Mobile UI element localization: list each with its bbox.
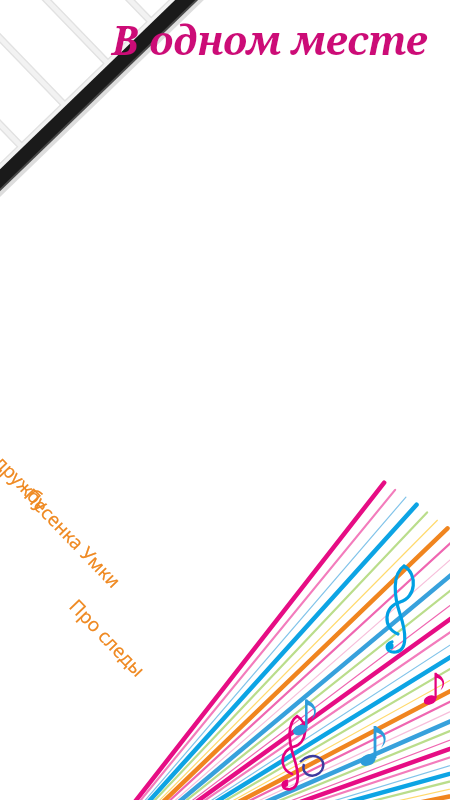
- staticText: Песенка Умки: [18, 483, 127, 593]
- button[interactable]: Про следы: [64, 593, 151, 683]
- staticText: В одном месте: [112, 12, 428, 66]
- button[interactable]: дружбу: [0, 449, 55, 516]
- staticText: дружбу: [0, 449, 55, 516]
- staticText: Про следы: [64, 593, 151, 683]
- button[interactable]: Песенка Умки: [18, 483, 127, 593]
- button[interactable]: Song list phone preview: [0, 0, 450, 800]
